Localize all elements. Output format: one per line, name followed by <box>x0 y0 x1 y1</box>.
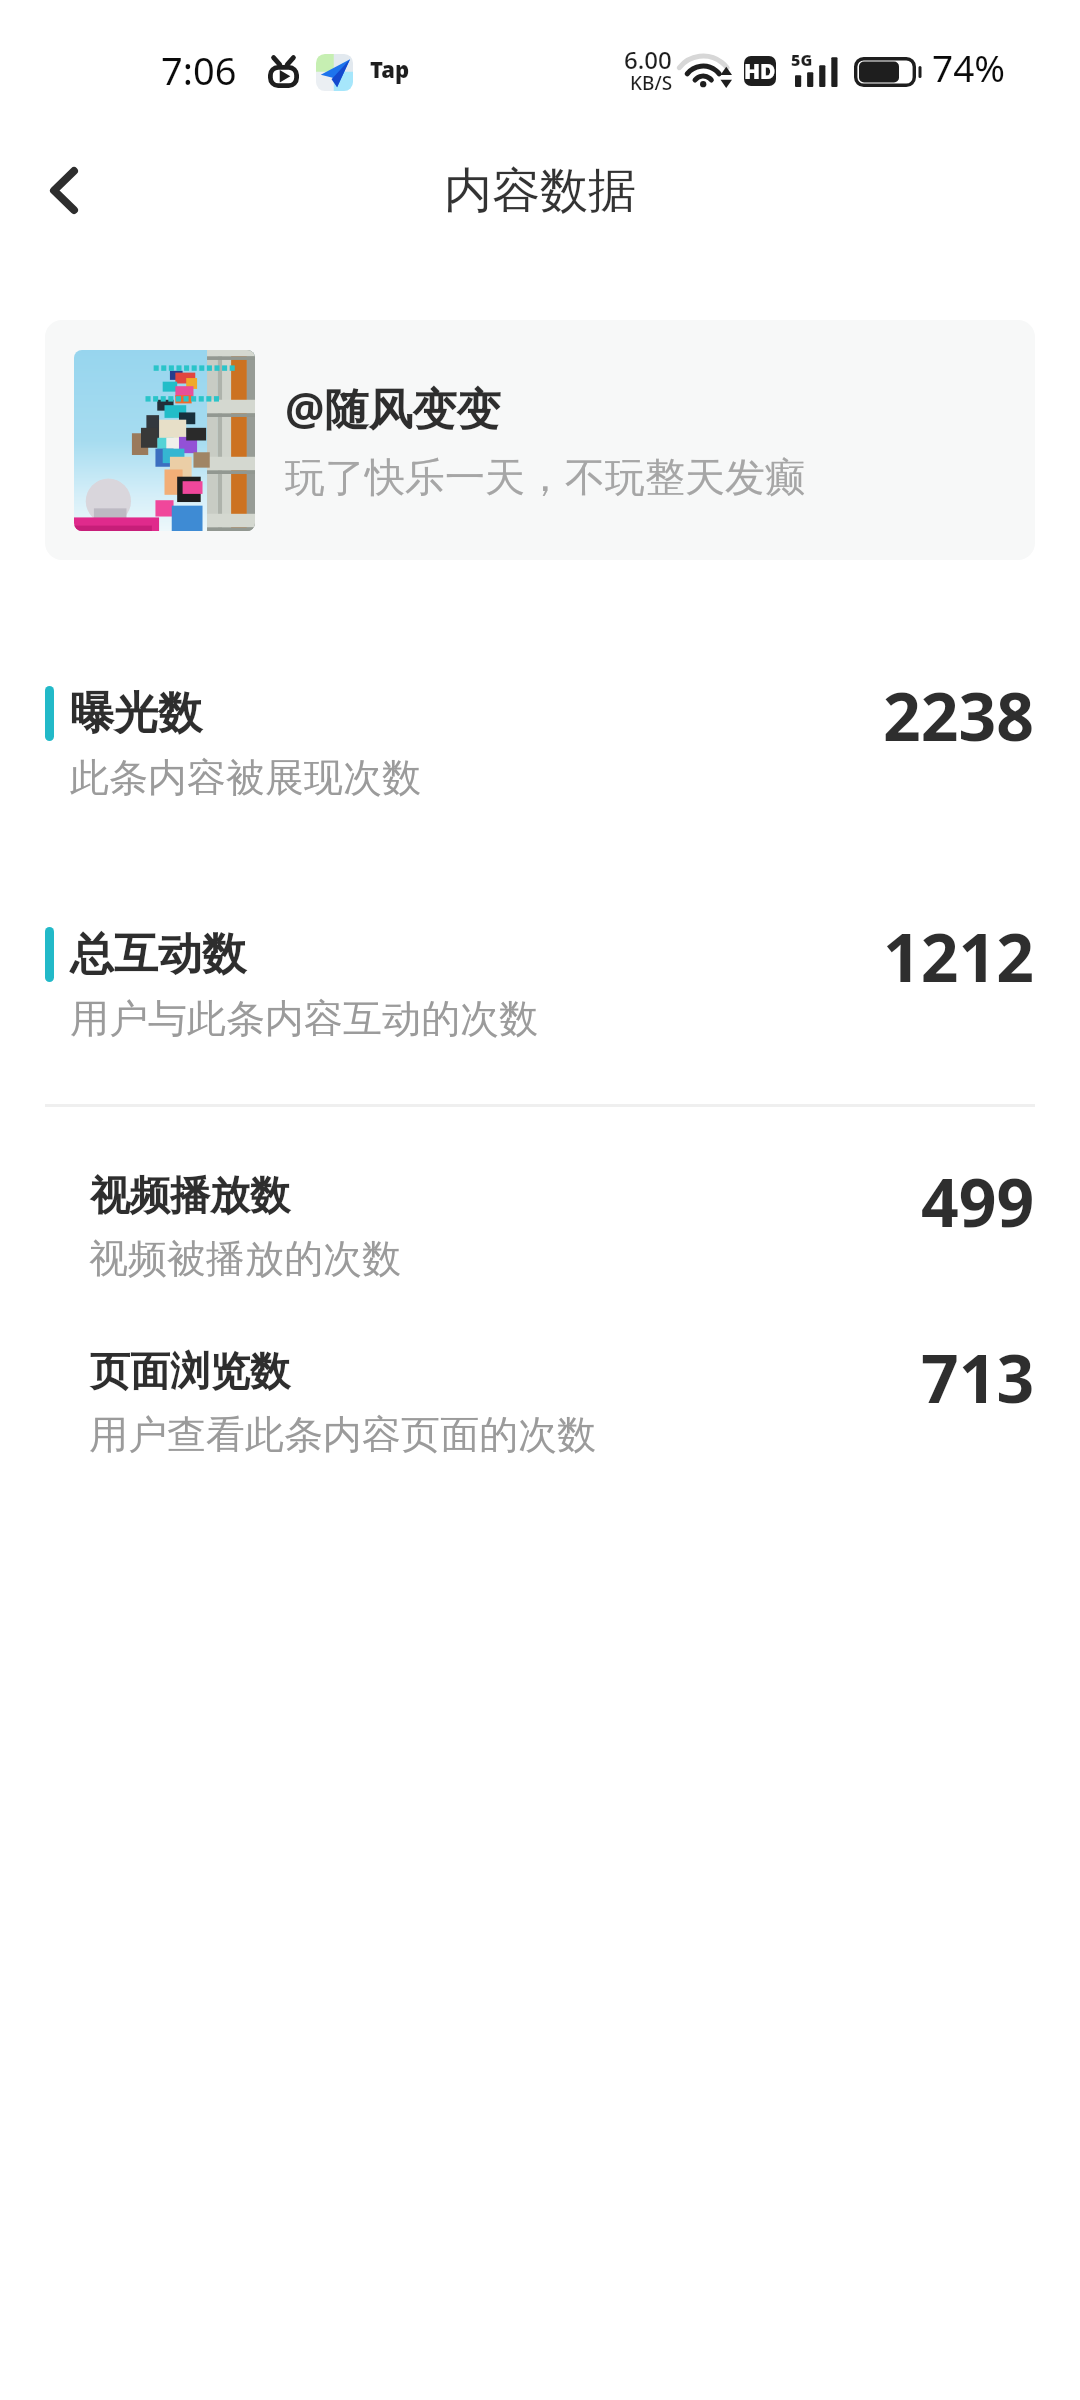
staticText: 用户与此条内容互动的次数 <box>70 994 538 1043</box>
staticText: 玩了快乐一天，不玩整天发癫 <box>285 452 805 502</box>
button[interactable]: 曝光数 <box>45 657 1035 799</box>
staticText: 此条内容被展现次数 <box>70 753 421 802</box>
staticText: 内容数据 <box>444 161 636 221</box>
staticText: HD <box>744 57 776 86</box>
button[interactable]: 视频播放数 <box>45 1168 1035 1298</box>
staticText: KB/S <box>630 70 673 96</box>
staticText: 页面浏览数 <box>90 1346 290 1396</box>
staticText: Tap <box>370 54 410 84</box>
staticText: 74% <box>932 42 1006 92</box>
staticText: 用户查看此条内容页面的次数 <box>89 1410 596 1459</box>
button[interactable]: 页面浏览数 <box>45 1344 1035 1474</box>
staticText: 1212 <box>883 911 1035 1001</box>
button[interactable]: 总互动数 <box>45 898 1035 1040</box>
staticText: 曝光数 <box>70 686 202 741</box>
staticText: 2238 <box>883 670 1035 760</box>
staticText: 7:06 <box>161 44 237 96</box>
staticText: 视频播放数 <box>90 1170 290 1220</box>
button[interactable]: @随风变变 <box>45 320 1035 560</box>
staticText: 总互动数 <box>70 927 246 982</box>
staticText: 视频被播放的次数 <box>89 1234 401 1283</box>
staticText: @随风变变 <box>285 378 501 438</box>
staticText: 499 <box>921 1156 1035 1246</box>
staticText: 5G <box>791 49 813 71</box>
staticText: 713 <box>921 1332 1035 1422</box>
button[interactable]: Back <box>20 146 108 234</box>
staticText: 6.00 <box>624 43 672 76</box>
